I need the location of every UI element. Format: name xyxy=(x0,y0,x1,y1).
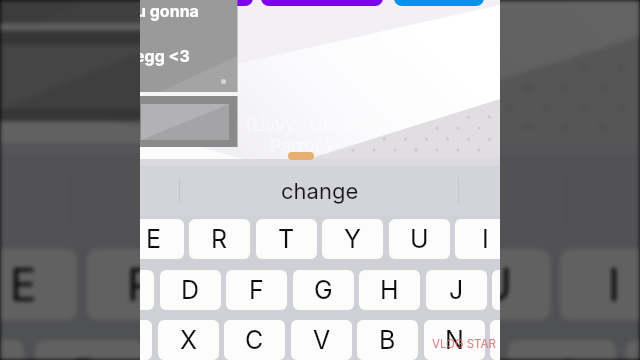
button[interactable]: T xyxy=(256,219,317,259)
staticText: Parrot ) xyxy=(270,135,332,156)
button[interactable]: Option 1 xyxy=(164,0,253,6)
button[interactable]: J xyxy=(426,270,487,310)
button[interactable]: D xyxy=(35,340,143,360)
button[interactable]: B xyxy=(357,320,418,360)
button[interactable]: change xyxy=(140,166,500,216)
button[interactable]: S xyxy=(140,270,154,310)
staticText: J xyxy=(549,349,575,360)
button[interactable]: change xyxy=(0,155,640,244)
staticText: Y xyxy=(363,258,394,312)
button[interactable]: S xyxy=(0,340,24,360)
button[interactable]: D xyxy=(160,270,221,310)
staticText: D xyxy=(73,349,106,360)
staticText: U xyxy=(479,258,513,312)
staticText: G xyxy=(314,275,333,305)
button[interactable]: C xyxy=(224,320,285,360)
button[interactable]: K xyxy=(492,270,500,310)
staticText: Parrot ) xyxy=(231,100,341,138)
staticText: X xyxy=(180,325,198,355)
staticText: R xyxy=(127,258,156,312)
staticText: F xyxy=(249,275,264,305)
button[interactable]: E xyxy=(0,249,77,320)
staticText: VLOG STAR xyxy=(432,337,496,351)
staticText: D xyxy=(181,275,200,305)
button[interactable]: N xyxy=(424,320,485,360)
button[interactable]: F xyxy=(226,270,287,310)
staticText: T xyxy=(245,258,274,312)
staticText: change xyxy=(281,178,359,205)
button[interactable]: F xyxy=(153,340,261,360)
button[interactable]: U xyxy=(389,219,450,259)
button[interactable]: T xyxy=(205,249,313,320)
staticText: H xyxy=(380,275,399,305)
button[interactable]: I xyxy=(560,249,640,320)
button[interactable]: Option 2 xyxy=(261,0,383,6)
staticText: U xyxy=(410,224,429,254)
button[interactable]: K xyxy=(626,340,640,360)
staticText: R xyxy=(211,224,228,254)
staticText: B xyxy=(379,325,396,355)
button[interactable]: I xyxy=(455,219,500,259)
button[interactable]: G xyxy=(293,270,354,310)
button[interactable]: R xyxy=(189,219,250,259)
staticText: J xyxy=(449,275,464,305)
staticText: E xyxy=(146,224,162,254)
button[interactable]: H xyxy=(359,270,420,310)
staticText: change xyxy=(251,176,389,223)
button[interactable]: Y xyxy=(322,219,383,259)
staticText: (Livvy Old Neon xyxy=(187,63,440,101)
staticText: egg <3 xyxy=(140,46,190,65)
staticText: I xyxy=(608,258,620,312)
button[interactable]: Y xyxy=(324,249,432,320)
staticText: I xyxy=(482,224,489,254)
staticText: u gonna xyxy=(140,1,199,20)
staticText: E xyxy=(10,258,37,312)
staticText: N xyxy=(445,325,464,355)
button[interactable]: E xyxy=(140,219,184,259)
button[interactable]: U xyxy=(442,249,550,320)
staticText: Y xyxy=(344,224,361,254)
button[interactable]: M xyxy=(490,320,500,360)
staticText: C xyxy=(245,325,264,355)
button[interactable]: X xyxy=(158,320,219,360)
staticText: T xyxy=(278,224,295,254)
staticText: F xyxy=(194,349,221,360)
button[interactable]: H xyxy=(389,340,497,360)
staticText: V xyxy=(313,325,331,355)
button[interactable]: J xyxy=(508,340,616,360)
button[interactable]: R xyxy=(87,249,195,320)
button[interactable]: Option 3 xyxy=(394,0,484,6)
button[interactable]: V xyxy=(291,320,352,360)
button[interactable]: Z xyxy=(140,320,152,360)
button[interactable]: G xyxy=(271,340,379,360)
